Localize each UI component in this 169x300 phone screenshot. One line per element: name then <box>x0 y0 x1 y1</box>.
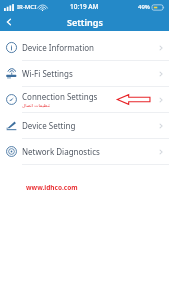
staticText: IR-MCI <box>17 3 37 11</box>
staticText: www.idhco.com <box>26 183 78 192</box>
button[interactable]: Connection Settings <box>0 87 169 112</box>
staticText: 49% <box>138 3 150 11</box>
staticText: 10:19 AM <box>70 2 99 11</box>
staticText: Settings <box>67 16 103 28</box>
button[interactable]: Device Setting <box>0 113 169 138</box>
button[interactable]: Wi-Fi Settings <box>0 61 169 86</box>
staticText: Device Setting <box>22 120 76 131</box>
button[interactable]: Network Diagnostics <box>0 139 169 164</box>
staticText: Connection Settings <box>22 91 98 102</box>
staticText: Wi-Fi Settings <box>22 68 73 79</box>
button[interactable]: Back <box>0 13 18 31</box>
button[interactable]: Device Information <box>0 35 169 60</box>
staticText: Network Diagnostics <box>22 146 100 157</box>
staticText: Device Information <box>22 42 95 53</box>
staticText: تنظیمات اتصال <box>22 102 51 108</box>
